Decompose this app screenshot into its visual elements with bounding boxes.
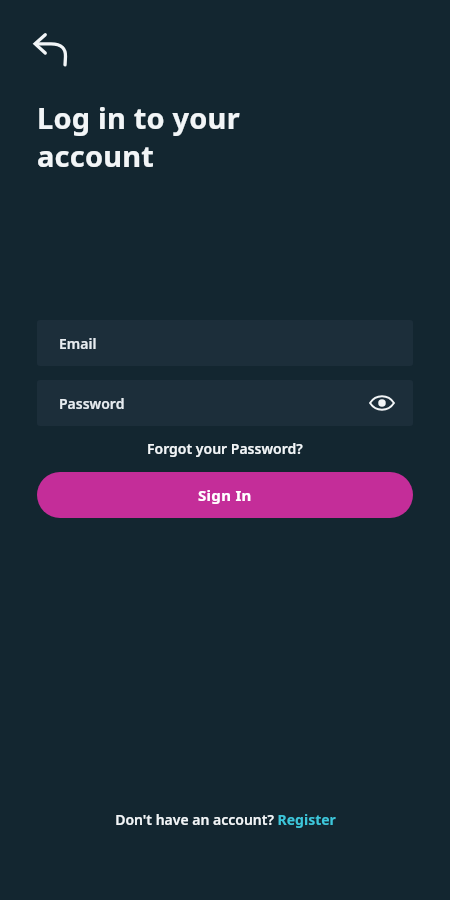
button[interactable]: Show password: [365, 386, 399, 420]
staticText: Log in to your account: [37, 98, 240, 175]
button[interactable]: Don't have an account? Register: [105, 806, 346, 833]
staticText: Password: [59, 394, 125, 413]
staticText: Don't have an account? Register: [115, 810, 336, 829]
button[interactable]: Password: [37, 380, 413, 426]
staticText: Forgot your Password?: [147, 439, 303, 458]
staticText: Sign In: [198, 485, 252, 505]
button[interactable]: Forgot your Password?: [139, 436, 311, 461]
staticText: Email: [59, 334, 97, 353]
button[interactable]: Back: [28, 28, 74, 74]
button[interactable]: Email: [37, 320, 413, 366]
button[interactable]: Sign In: [37, 472, 413, 518]
